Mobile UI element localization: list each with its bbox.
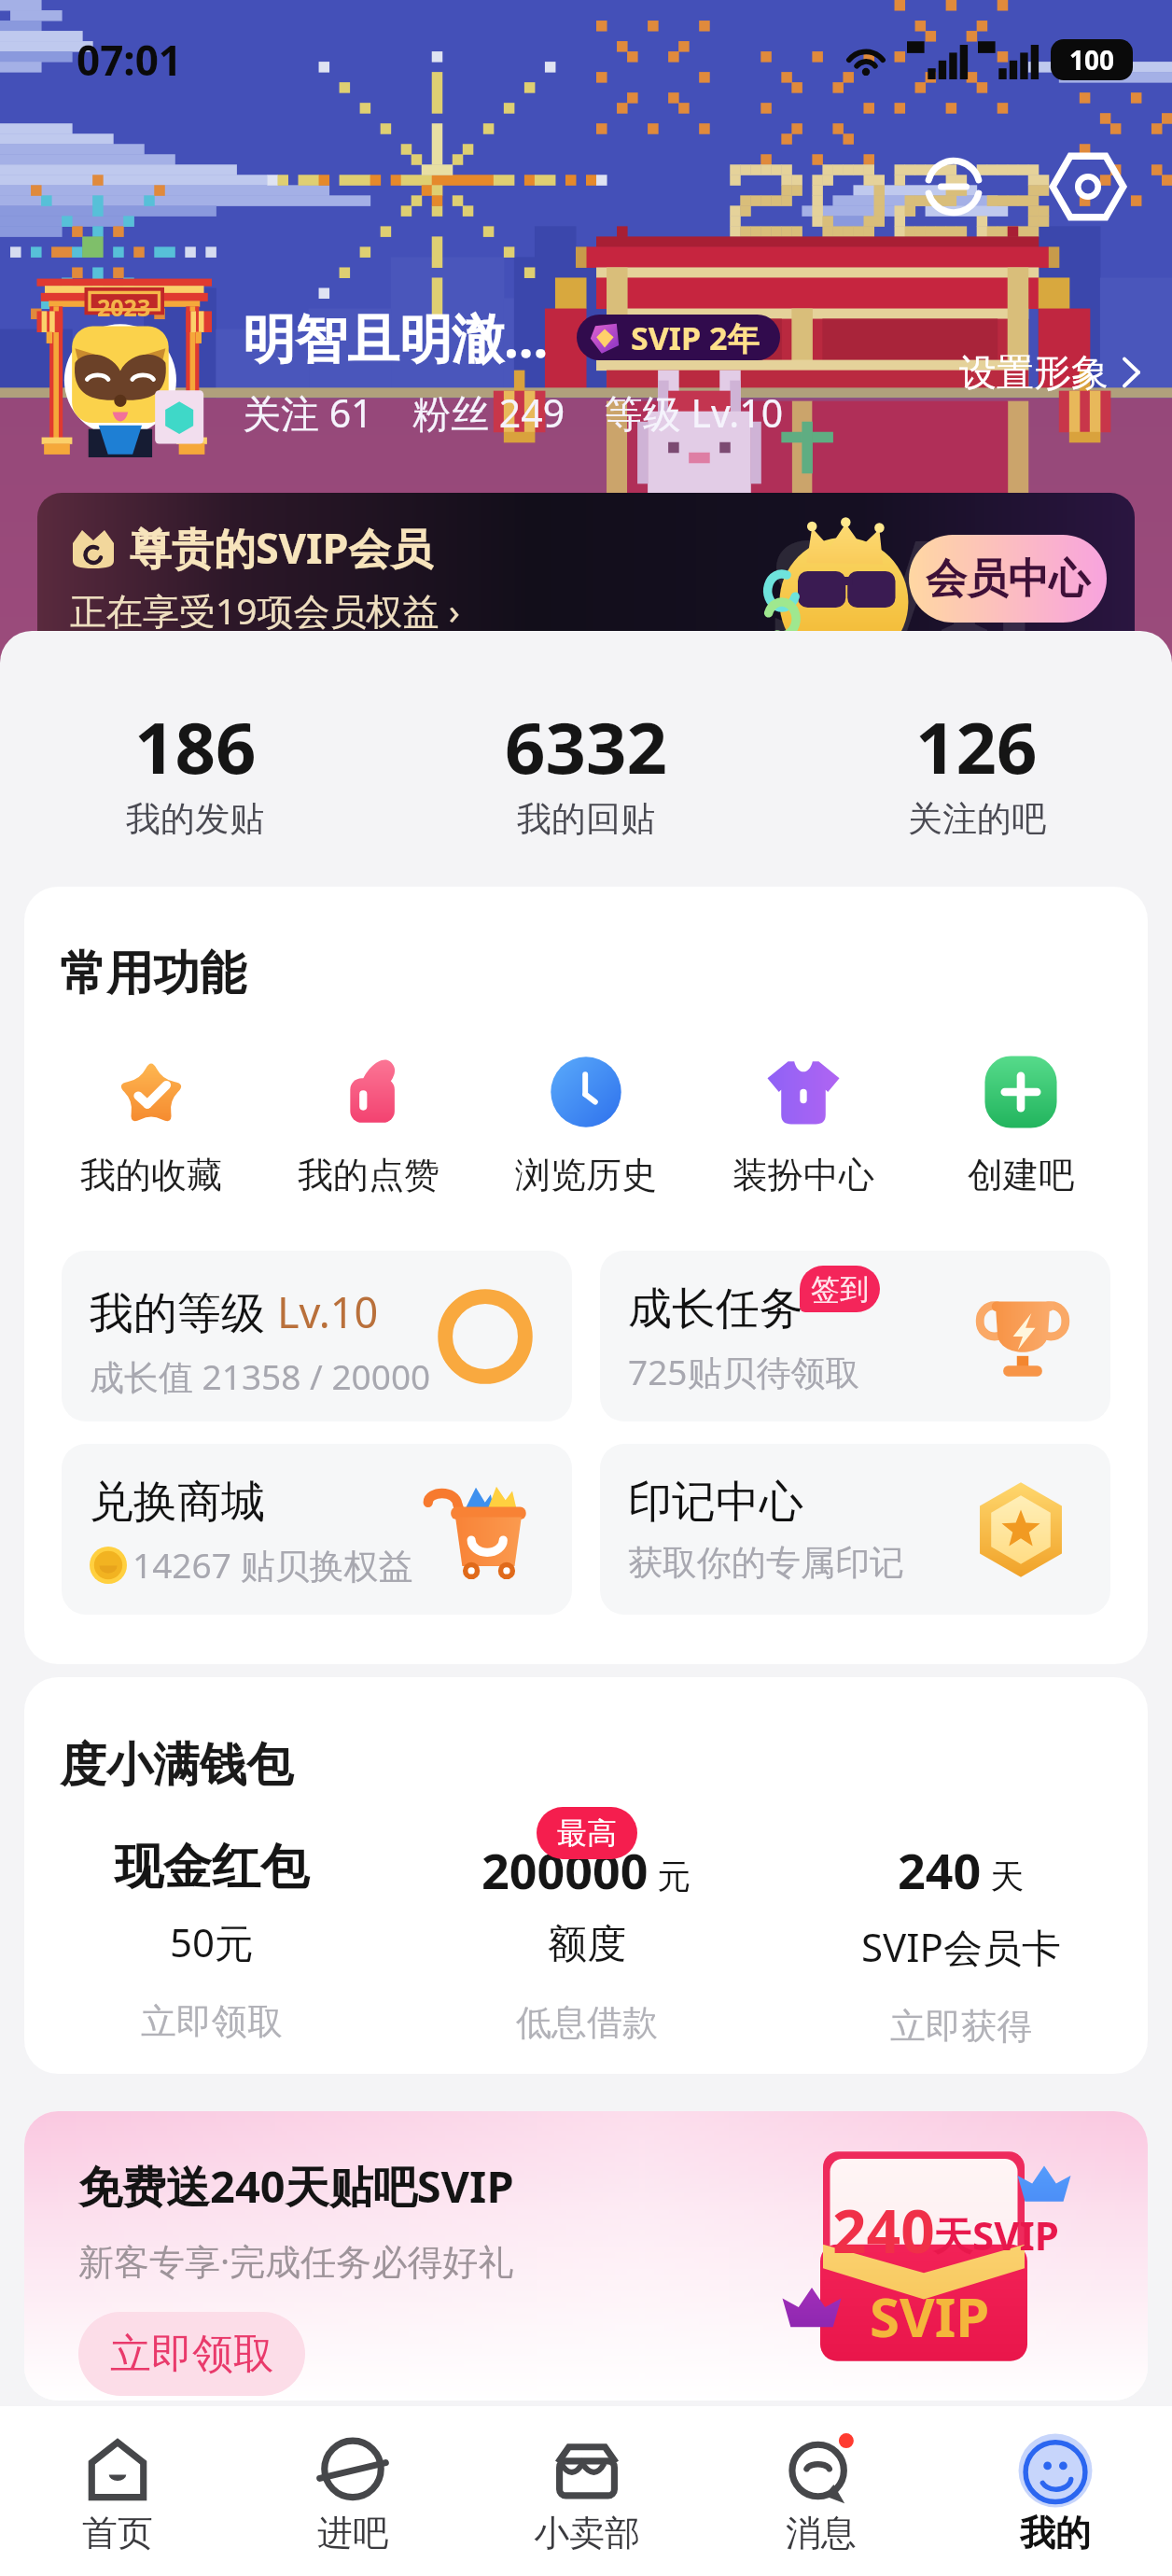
staticText: 07:01 <box>77 32 183 88</box>
staticText: 常用功能 <box>60 945 246 1003</box>
button[interactable]: 现金红包 <box>24 1837 399 2044</box>
staticText: 725贴贝待领取 <box>628 1348 860 1395</box>
staticText: SVIP 2年 <box>631 316 760 359</box>
staticText: 印记中心 <box>628 1475 803 1530</box>
staticText: Lv.10 <box>277 1283 379 1340</box>
staticText: 天SVIP <box>933 2208 1059 2261</box>
staticText: 尊贵的SVIP会员 <box>130 519 433 576</box>
staticText: 200000 <box>481 1837 649 1903</box>
button[interactable]: Settings <box>1039 138 1137 235</box>
staticText: 我的收藏 <box>80 1153 222 1197</box>
staticText: 186 <box>134 698 257 795</box>
staticText: 进吧 <box>317 2511 388 2555</box>
button[interactable]: 240 <box>774 1837 1148 2049</box>
staticText: 兑换商城 <box>90 1475 265 1530</box>
staticText: 240 <box>898 1837 982 1903</box>
staticText: 装扮中心 <box>732 1153 874 1197</box>
button[interactable]: 立即领取 <box>78 2312 305 2396</box>
staticText: 浏览历史 <box>515 1153 657 1197</box>
button[interactable]: 印记中心 <box>600 1444 1110 1615</box>
staticText: 创建吧 <box>968 1153 1074 1197</box>
staticText: 免费送240天贴吧SVIP <box>78 2156 514 2216</box>
staticText: 立即获得 <box>890 2004 1032 2049</box>
staticText: 126 <box>915 698 1038 795</box>
staticText: 明智且明澈... <box>243 301 549 372</box>
button[interactable]: 我的 <box>938 2406 1172 2576</box>
staticText: 新客专享·完成任务必得好礼 <box>78 2236 514 2285</box>
staticText: 6332 <box>505 698 667 795</box>
button[interactable]: 6332 <box>390 698 781 841</box>
button[interactable]: 进吧 <box>235 2406 469 2576</box>
button[interactable]: 设置形象 <box>959 349 1140 396</box>
button[interactable]: 126 <box>781 698 1172 841</box>
button[interactable]: 我的等级 <box>62 1251 572 1421</box>
staticText: 100 <box>1069 42 1115 77</box>
staticText: 元 <box>649 1853 691 1898</box>
staticText: 正在享受19项会员权益 › <box>70 585 460 635</box>
button[interactable]: 成长任务 <box>600 1251 1110 1421</box>
staticText: 最高 <box>557 1814 617 1852</box>
staticText: 我的等级 <box>90 1281 277 1341</box>
staticText: 现金红包 <box>115 1837 309 1898</box>
staticText: 我的 <box>1020 2511 1091 2555</box>
staticText: 获取你的专属印记 <box>628 1541 904 1585</box>
button[interactable]: 首页 <box>0 2406 235 2576</box>
staticText: SVIP会员卡 <box>861 1920 1061 1973</box>
staticText: 会员中心 <box>926 553 1090 605</box>
staticText: 设置形象 <box>959 349 1109 396</box>
button[interactable]: 我的收藏 <box>43 1054 259 1197</box>
staticText: 消息 <box>786 2511 857 2555</box>
staticText: 我的点赞 <box>298 1153 439 1197</box>
staticText: 成长任务 <box>628 1281 803 1337</box>
staticText: 签到 <box>811 1271 869 1308</box>
staticText: 我的发贴 <box>126 797 264 841</box>
staticText: 14267 贴贝换权益 <box>133 1541 413 1589</box>
button[interactable]: 装扮中心 <box>694 1054 912 1197</box>
staticText: 2023 <box>97 291 151 323</box>
staticText: SVIP <box>870 2279 990 2353</box>
button[interactable]: 小卖部 <box>469 2406 704 2576</box>
button[interactable]: 尊贵的SVIP会员 <box>37 493 1135 665</box>
staticText: 关注的吧 <box>908 797 1046 841</box>
staticText: SVIP <box>769 493 1079 665</box>
staticText: 低息借款 <box>516 2000 658 2045</box>
staticText: 成长值 21358 / 20000 <box>90 1352 431 1400</box>
button[interactable]: Scan <box>905 138 1002 235</box>
button[interactable]: SVIP 2年 <box>577 315 780 360</box>
staticText: 立即领取 <box>110 2329 274 2380</box>
staticText: 首页 <box>82 2511 153 2555</box>
staticText: 天 <box>982 1853 1025 1898</box>
staticText: 额度 <box>548 1920 626 1969</box>
staticText: 立即领取 <box>141 1999 283 2044</box>
button[interactable]: 免费送240天贴吧SVIP <box>24 2111 1148 2401</box>
button[interactable]: 浏览历史 <box>477 1054 694 1197</box>
button[interactable]: 消息 <box>704 2406 938 2576</box>
button[interactable]: 我的点赞 <box>259 1054 477 1197</box>
staticText: 小卖部 <box>534 2511 640 2555</box>
staticText: 关注 61 粉丝 249 等级 Lv.10 <box>243 386 784 439</box>
button[interactable]: 兑换商城 <box>62 1444 572 1615</box>
staticText: 我的回贴 <box>517 797 655 841</box>
staticText: 度小满钱包 <box>60 1736 293 1795</box>
button[interactable]: 200000 <box>399 1837 774 2045</box>
staticText: 50元 <box>170 1915 255 1968</box>
button[interactable]: 创建吧 <box>912 1054 1129 1197</box>
button[interactable]: 186 <box>0 698 390 841</box>
staticText: 240 <box>832 2190 935 2271</box>
button[interactable]: 会员中心 <box>909 535 1107 623</box>
